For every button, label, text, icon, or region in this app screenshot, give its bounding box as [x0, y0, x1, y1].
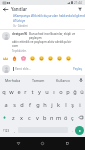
button[interactable]: b: [41, 111, 48, 124]
button[interactable]: ç: [69, 111, 76, 124]
button[interactable]: Back: [12, 137, 25, 150]
button[interactable]: Back: [0, 5, 11, 13]
staticText: destgan96: [12, 32, 29, 36]
staticText: ö: [64, 114, 68, 122]
button[interactable]: Tamam: [26, 75, 51, 85]
staticText: e: [17, 88, 21, 96]
button[interactable]: Emoji: [19, 54, 28, 63]
button[interactable]: Backspace: [76, 111, 85, 124]
button[interactable]: Recents: [61, 137, 74, 150]
button[interactable]: Filter: [75, 5, 85, 13]
staticText: y: [38, 88, 41, 96]
button[interactable]: Emoji: [46, 54, 55, 63]
button[interactable]: x: [17, 111, 25, 124]
staticText: t: [31, 88, 34, 96]
button[interactable]: Emoji: [10, 54, 19, 63]
button[interactable]: y: [36, 85, 43, 98]
staticText: v: [36, 114, 39, 122]
button[interactable]: ı: [50, 85, 57, 98]
button[interactable]: Home: [36, 137, 49, 150]
staticText: ğ: [73, 88, 77, 96]
staticText: r: [24, 88, 27, 96]
staticText: #Kampanya #Etkinlik duyuruları hakkında …: [13, 14, 85, 18]
staticText: i: [79, 101, 81, 109]
button[interactable]: Paylaş: [72, 65, 83, 73]
staticText: p: [66, 88, 70, 96]
button[interactable]: t: [29, 85, 36, 98]
button[interactable]: e: [15, 85, 22, 98]
button[interactable]: Emoji: [28, 54, 37, 63]
button[interactable]: ?123: [1, 125, 11, 136]
staticText: Paylaş: [73, 67, 82, 71]
staticText: Yanıtlar: [11, 6, 28, 12]
button[interactable]: o: [57, 85, 64, 98]
staticText: c: [28, 114, 31, 122]
staticText: ?123: [3, 129, 10, 133]
staticText: s: [13, 101, 16, 109]
staticText: Teşekkürler.: [12, 49, 27, 53]
button[interactable]: v: [33, 111, 41, 124]
staticText: ş: [71, 101, 74, 109]
staticText: 3s · Gönderi: [13, 24, 28, 28]
button[interactable]: Shift: [0, 111, 9, 124]
staticText: Yanıt ekle...: [15, 67, 31, 71]
staticText: .: [72, 128, 73, 133]
staticText: b: [43, 114, 47, 122]
staticText: x: [20, 114, 23, 122]
button[interactable]: d: [18, 98, 26, 111]
staticText: Bunuchod incelikasinlar, ekipli ve payla…: [29, 32, 82, 40]
staticText: Merhaba: [5, 78, 21, 83]
staticText: j: [51, 101, 53, 109]
staticText: f: [29, 101, 31, 109]
staticText: o: [59, 88, 63, 96]
staticText: h: [43, 101, 47, 109]
staticText: u: [45, 88, 49, 96]
staticText: ı: [53, 88, 55, 96]
staticText: w: [9, 88, 14, 96]
button[interactable]: h: [41, 98, 48, 111]
staticText: n: [50, 114, 54, 122]
button[interactable]: ş: [69, 98, 76, 111]
staticText: ü: [80, 88, 84, 96]
button[interactable]: u: [43, 85, 50, 98]
button[interactable]: j: [48, 98, 55, 111]
button[interactable]: p: [64, 85, 71, 98]
button[interactable]: Emoji: [37, 54, 46, 63]
staticText: d: [20, 101, 24, 109]
button[interactable]: g: [34, 98, 41, 111]
button[interactable]: Emoji: [64, 54, 73, 63]
staticText: ç: [71, 114, 74, 122]
button[interactable]: m: [55, 111, 62, 124]
button[interactable]: k: [55, 98, 62, 111]
button[interactable]: Send: [75, 126, 84, 135]
button[interactable]: Kullanıcı: [51, 75, 76, 85]
button[interactable]: Voice input: [76, 75, 85, 85]
button[interactable]: Emoji: [55, 54, 64, 63]
button[interactable]: q: [0, 85, 8, 98]
button[interactable]: Emoji: [1, 54, 10, 63]
staticText: g: [36, 101, 40, 109]
button[interactable]: z: [9, 111, 17, 124]
button[interactable]: ,: [11, 125, 17, 136]
button[interactable]: f: [26, 98, 34, 111]
button[interactable]: n: [48, 111, 55, 124]
staticText: #Türkiye: [13, 19, 26, 23]
staticText: l: [65, 101, 67, 109]
button[interactable]: l: [62, 98, 69, 111]
button[interactable]: Merhaba: [0, 75, 26, 85]
staticText: z: [12, 114, 15, 122]
button[interactable]: ü: [78, 85, 85, 98]
staticText: k: [57, 101, 60, 109]
button[interactable]: a: [2, 98, 10, 111]
button[interactable]: w: [8, 85, 15, 98]
button[interactable]: ğ: [71, 85, 78, 98]
button[interactable]: s: [10, 98, 18, 111]
button[interactable]: i: [76, 98, 83, 111]
button[interactable]: c: [25, 111, 33, 124]
staticText: ,: [14, 128, 15, 133]
button[interactable]: r: [22, 85, 29, 98]
button[interactable]: ö: [62, 111, 69, 124]
staticText: a: [4, 101, 8, 109]
